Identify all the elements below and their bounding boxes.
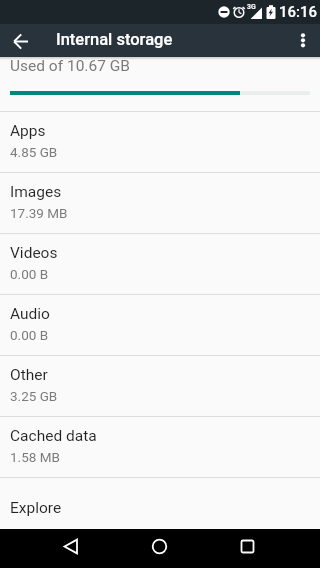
button[interactable]: Audio — [0, 295, 320, 355]
button[interactable]: Images — [0, 173, 320, 233]
staticText: 4.85 GB — [10, 144, 58, 160]
button[interactable]: Videos — [0, 234, 320, 294]
staticText: 1.58 MB — [10, 449, 60, 465]
button[interactable]: Apps — [0, 112, 320, 172]
staticText: 3.25 GB — [10, 388, 58, 404]
staticText: 3G — [247, 3, 256, 11]
button[interactable]: Cached data — [0, 417, 320, 477]
staticText: Apps — [10, 122, 46, 140]
staticText: Internal storage — [56, 30, 173, 49]
staticText: 17.39 MB — [10, 205, 68, 221]
button[interactable] — [5, 25, 37, 57]
staticText: Explore — [10, 499, 62, 517]
staticText: Used of 10.67 GB — [10, 57, 130, 75]
staticText: Images — [10, 183, 62, 201]
staticText: Audio — [10, 305, 50, 323]
staticText: 0.00 B — [10, 266, 49, 282]
button[interactable]: Other — [0, 356, 320, 416]
staticText: Videos — [10, 244, 58, 262]
staticText: 16:16 — [279, 3, 318, 21]
button[interactable] — [224, 529, 272, 568]
button[interactable] — [136, 529, 184, 568]
button[interactable] — [46, 529, 94, 568]
button[interactable]: Explore — [0, 478, 320, 529]
button[interactable] — [289, 25, 319, 56]
staticText: 0.00 B — [10, 327, 49, 343]
staticText: Other — [10, 366, 48, 384]
staticText: Cached data — [10, 427, 97, 445]
